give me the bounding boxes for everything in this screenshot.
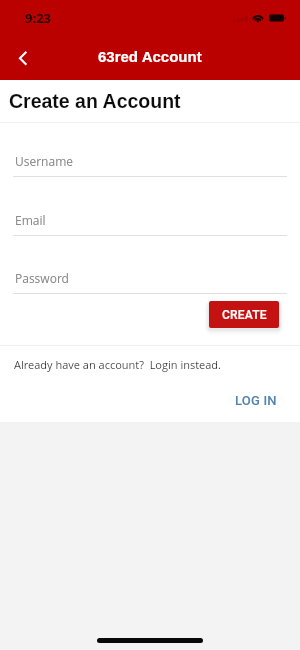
- staticText: CREATE: [222, 308, 267, 322]
- staticText: Password: [15, 270, 69, 286]
- button[interactable]: LOG IN: [228, 389, 284, 411]
- staticText: Email: [15, 212, 46, 228]
- staticText: 9:23: [25, 9, 51, 27]
- button[interactable]: Back: [4, 42, 40, 74]
- button[interactable]: CREATE: [209, 301, 279, 328]
- staticText: Already have an account? Login instead.: [14, 357, 222, 372]
- staticText: LOG IN: [235, 393, 277, 408]
- staticText: Username: [15, 153, 74, 169]
- staticText: Create an Account: [9, 90, 181, 112]
- staticText: 63red Account: [98, 48, 202, 65]
